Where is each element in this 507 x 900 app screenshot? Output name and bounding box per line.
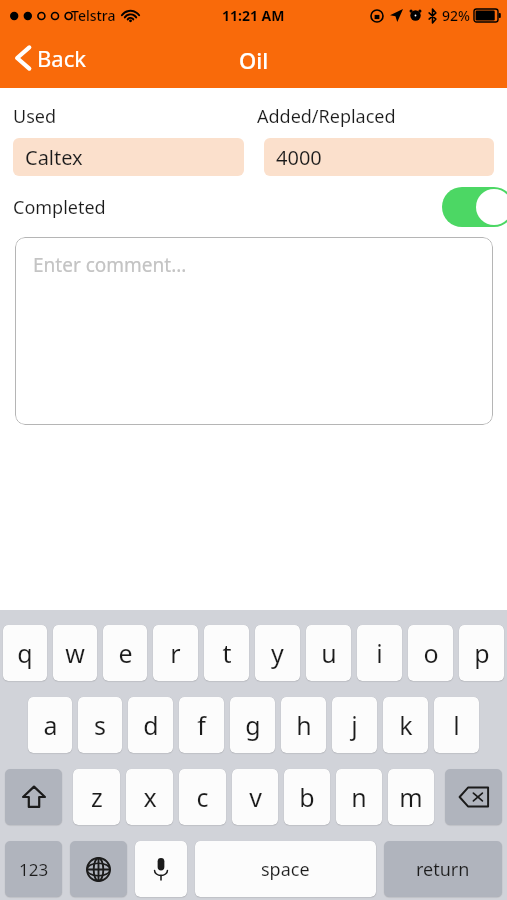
button[interactable]: Enter comment... (15, 237, 493, 425)
button[interactable]: space (195, 841, 376, 897)
staticText: c (196, 780, 209, 814)
staticText: u (321, 636, 337, 670)
button[interactable]: k (383, 697, 428, 753)
staticText: Completed (13, 195, 106, 220)
button[interactable]: o (408, 625, 453, 681)
staticText: a (43, 708, 58, 742)
button[interactable]: y (255, 625, 300, 681)
button[interactable]: q (3, 625, 47, 681)
button[interactable]: h (281, 697, 326, 753)
staticText: v (249, 780, 262, 814)
button[interactable]: Shift (5, 769, 62, 825)
staticText: n (351, 780, 367, 814)
button[interactable]: i (357, 625, 402, 681)
button[interactable]: n (336, 769, 382, 825)
button[interactable]: Dictate (135, 841, 187, 897)
button[interactable]: t (204, 625, 249, 681)
staticText: t (222, 636, 232, 670)
button[interactable]: s (78, 697, 122, 753)
button[interactable]: Back (10, 36, 92, 80)
button[interactable]: a (28, 697, 72, 753)
button[interactable]: v (232, 769, 278, 825)
button[interactable]: p (459, 625, 504, 681)
staticText: 123 (19, 858, 49, 881)
staticText: Oil (239, 45, 269, 75)
button[interactable]: m (388, 769, 434, 825)
staticText: z (91, 780, 103, 814)
staticText: Back (37, 43, 86, 73)
staticText: e (118, 636, 133, 670)
button[interactable]: j (332, 697, 377, 753)
button[interactable]: b (284, 769, 330, 825)
staticText: return (416, 857, 470, 882)
button[interactable]: Change keyboard (70, 841, 127, 897)
staticText: i (376, 636, 383, 670)
staticText: space (261, 857, 310, 882)
staticText: l (453, 708, 460, 742)
button[interactable]: 4000 (264, 138, 494, 176)
staticText: o (423, 636, 439, 670)
button[interactable]: Caltex (13, 138, 244, 176)
button[interactable]: f (179, 697, 224, 753)
staticText: Added/Replaced (257, 104, 396, 129)
staticText: x (143, 780, 157, 814)
button[interactable]: Backspace (445, 769, 502, 825)
staticText: Telstra (71, 6, 116, 25)
button[interactable]: d (128, 697, 173, 753)
button[interactable]: l (434, 697, 479, 753)
staticText: m (399, 780, 423, 814)
button[interactable]: return (384, 841, 502, 897)
staticText: q (17, 636, 33, 670)
staticText: f (197, 708, 206, 742)
staticText: 4000 (276, 144, 322, 171)
staticText: r (170, 636, 181, 670)
button[interactable]: z (73, 769, 120, 825)
staticText: 11:21 AM (222, 6, 285, 25)
button[interactable]: r (153, 625, 198, 681)
staticText: w (65, 636, 85, 670)
staticText: s (94, 708, 106, 742)
staticText: j (351, 708, 358, 742)
staticText: b (299, 780, 315, 814)
button[interactable]: e (103, 625, 147, 681)
staticText: Used (13, 104, 57, 129)
staticText: Caltex (25, 144, 83, 171)
button[interactable]: w (53, 625, 97, 681)
button[interactable]: Completed toggle (442, 187, 507, 227)
staticText: k (399, 708, 413, 742)
staticText: y (271, 636, 284, 670)
button[interactable]: x (126, 769, 173, 825)
button[interactable]: u (306, 625, 351, 681)
staticText: d (143, 708, 159, 742)
button[interactable]: c (179, 769, 226, 825)
button[interactable]: g (230, 697, 275, 753)
staticText: g (245, 708, 261, 742)
staticText: 92% (442, 6, 470, 25)
button[interactable]: 123 (5, 841, 62, 897)
staticText: h (296, 708, 312, 742)
staticText: p (474, 636, 490, 670)
staticText: Enter comment... (33, 252, 187, 278)
